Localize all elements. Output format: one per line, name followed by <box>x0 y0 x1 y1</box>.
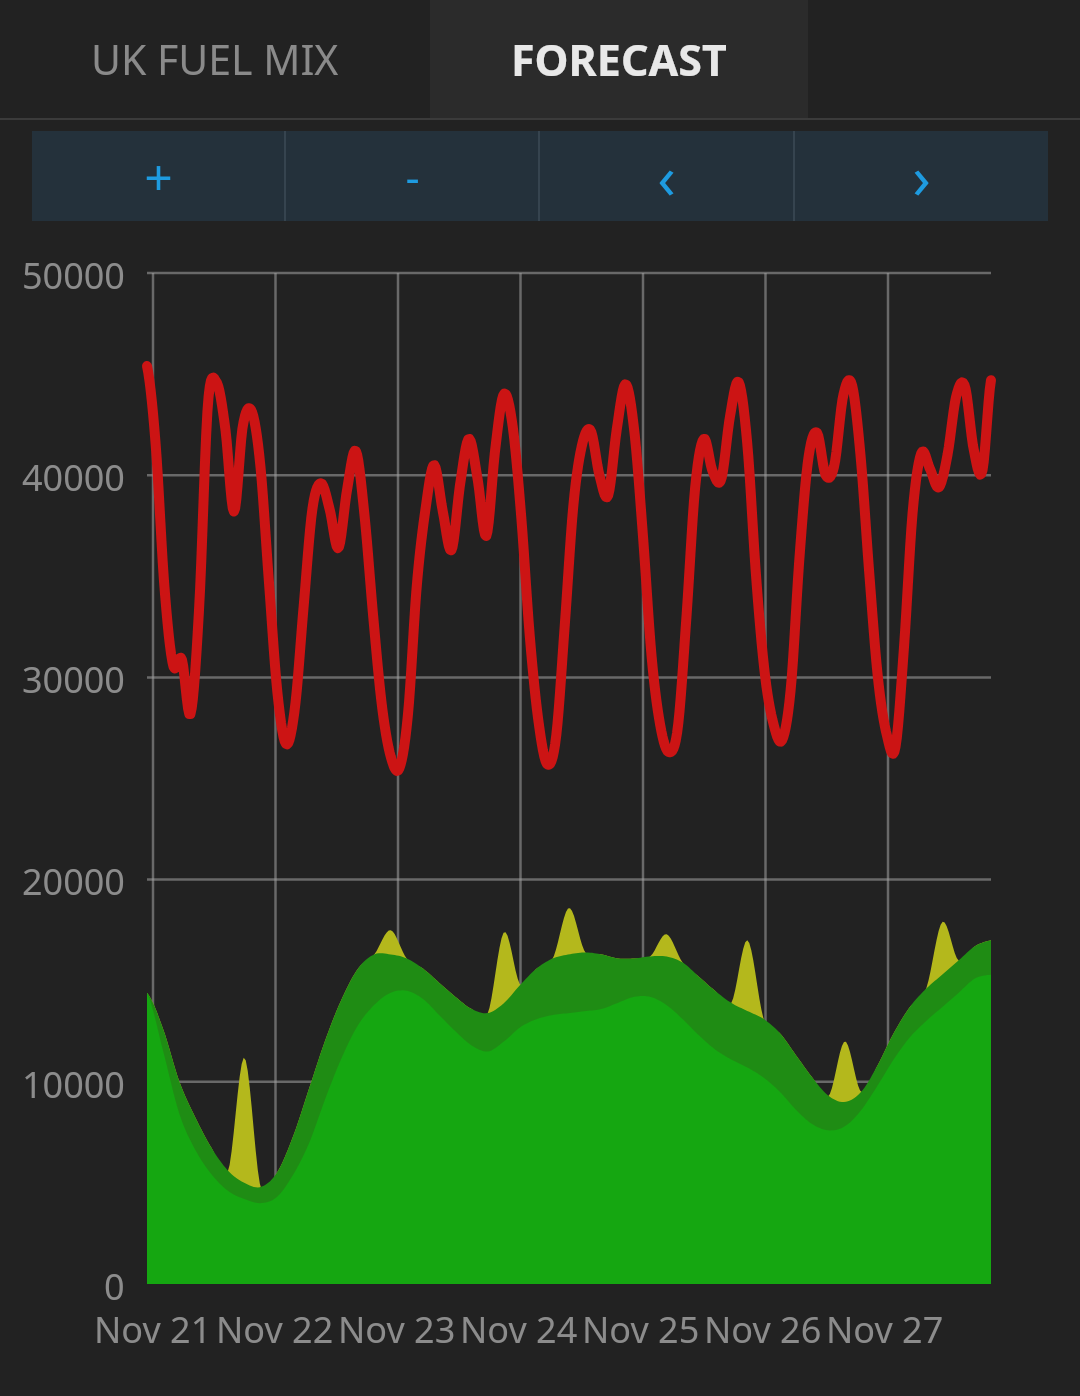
staticText: - <box>405 146 420 206</box>
button[interactable]: FORECAST <box>430 0 808 118</box>
staticText: Nov 24 <box>460 1305 578 1354</box>
staticText: ‹ <box>657 135 676 217</box>
staticText: 50000 <box>22 251 125 300</box>
button[interactable]: Zoom in <box>32 131 284 221</box>
button[interactable]: UK FUEL MIX <box>0 0 430 118</box>
staticText: Nov 25 <box>582 1305 700 1354</box>
staticText: Nov 23 <box>338 1305 456 1354</box>
staticText: Nov 22 <box>216 1305 334 1354</box>
staticText: Nov 27 <box>826 1305 944 1354</box>
staticText: 20000 <box>22 857 125 906</box>
button[interactable]: Previous <box>540 131 793 221</box>
staticText: Nov 26 <box>704 1305 822 1354</box>
staticText: FORECAST <box>511 30 727 89</box>
staticText: 0 <box>104 1262 125 1311</box>
staticText: 30000 <box>22 655 125 704</box>
staticText: 40000 <box>22 453 125 502</box>
staticText: › <box>912 135 931 217</box>
staticText: Nov 21 <box>94 1305 212 1354</box>
button[interactable]: Zoom out <box>286 131 538 221</box>
staticText: 10000 <box>22 1060 125 1109</box>
staticText: UK FUEL MIX <box>91 31 339 87</box>
staticText: + <box>144 142 173 210</box>
button[interactable]: Next <box>795 131 1048 221</box>
